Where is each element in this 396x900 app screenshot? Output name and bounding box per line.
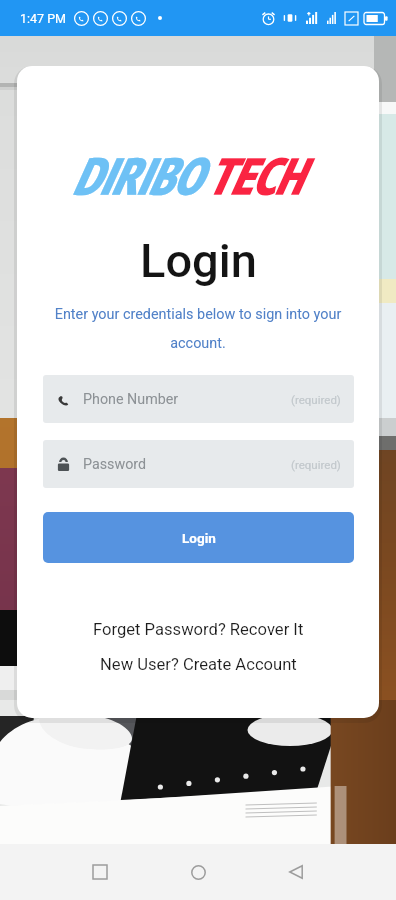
button[interactable]: Back [261, 844, 331, 900]
button[interactable]: Forget Password? Recover It [83, 615, 314, 644]
button[interactable]: New User? Create Account [90, 650, 307, 679]
button[interactable]: Recents [65, 844, 135, 900]
button[interactable]: Home [163, 844, 233, 900]
staticText: DIRIBO [72, 143, 200, 208]
button[interactable]: Password [43, 440, 354, 488]
staticText: New User? Create Account [100, 655, 297, 674]
staticText: Login [140, 233, 257, 288]
staticText: TECH [206, 143, 301, 208]
staticText: Login [182, 530, 216, 546]
staticText: 1:47 PM [20, 11, 67, 26]
staticText: (required) [291, 393, 341, 406]
staticText: Password [83, 456, 147, 473]
button[interactable]: Login [43, 512, 354, 563]
staticText: Forget Password? Recover It [93, 620, 304, 639]
staticText: Phone Number [83, 391, 179, 408]
button[interactable]: Phone Number [43, 375, 354, 423]
staticText: (required) [291, 458, 341, 471]
staticText: Enter your credentials below to sign int… [52, 306, 344, 351]
